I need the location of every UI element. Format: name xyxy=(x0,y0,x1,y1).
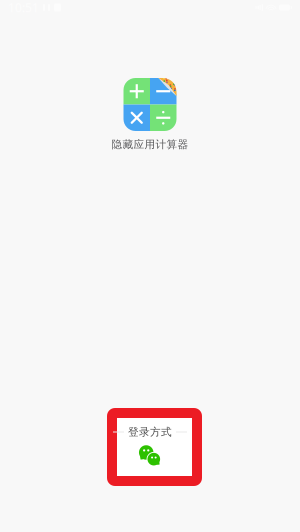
staticText: 登录方式 xyxy=(128,425,172,438)
button[interactable]: Sign in with WeChat xyxy=(138,445,161,468)
staticText: 隐藏应用计算器 xyxy=(111,138,188,151)
